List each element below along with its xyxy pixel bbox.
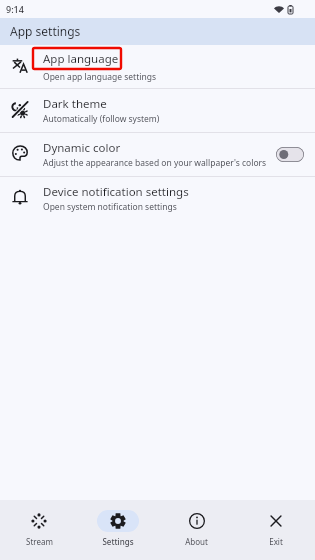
button[interactable]: Settings xyxy=(78,500,157,560)
button[interactable]: Dark theme xyxy=(0,89,315,133)
staticText: Settings xyxy=(102,536,134,547)
staticText: Dark theme xyxy=(43,96,107,112)
button[interactable]: About xyxy=(157,500,236,560)
staticText: 9:14 xyxy=(6,3,24,15)
staticText: Adjust the appearance based on your wall… xyxy=(43,157,267,169)
staticText: Open app language settings xyxy=(43,71,157,83)
button[interactable]: Stream xyxy=(0,500,78,560)
staticText: Dynamic color xyxy=(43,140,121,156)
staticText: App language xyxy=(43,51,119,67)
staticText: Exit xyxy=(269,536,283,547)
button[interactable]: Exit xyxy=(236,500,315,560)
staticText: Stream xyxy=(26,536,53,547)
other: Settings xyxy=(110,513,126,529)
button[interactable]: Device notification settings xyxy=(0,177,315,221)
button[interactable]: Dynamic color xyxy=(0,133,315,177)
staticText: Open system notification settings xyxy=(43,201,177,213)
other: Stream xyxy=(31,513,47,529)
other: About xyxy=(189,513,205,529)
staticText: App settings xyxy=(10,23,81,39)
button[interactable]: Dynamic color toggle xyxy=(276,147,304,162)
other: Exit xyxy=(268,513,284,529)
staticText: Device notification settings xyxy=(43,184,189,200)
button[interactable]: App language xyxy=(0,45,315,89)
staticText: About xyxy=(185,536,208,547)
staticText: Automatically (follow system) xyxy=(43,113,160,125)
